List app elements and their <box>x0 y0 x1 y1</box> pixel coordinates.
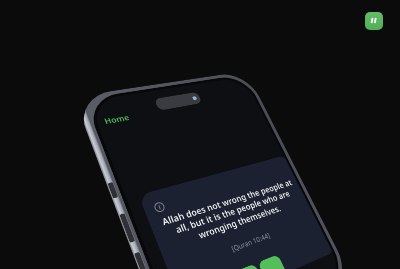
staticText: [Quran 10:44] <box>172 214 318 269</box>
button[interactable]: Allah does not wrong the people at all, … <box>138 155 333 269</box>
staticText: Allah does not wrong the people at all, … <box>153 175 308 254</box>
button[interactable]: Quotes app icon <box>365 12 383 30</box>
button[interactable]: Action <box>257 254 289 269</box>
staticText: Home <box>103 112 131 127</box>
button[interactable]: Action <box>233 263 266 269</box>
